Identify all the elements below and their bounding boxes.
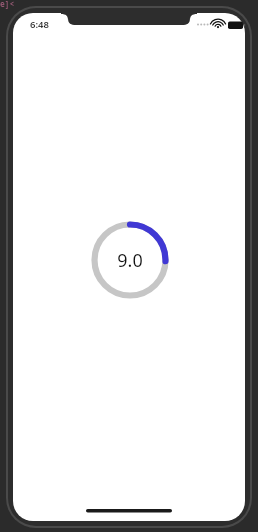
button[interactable]: Rating 9.0 out of 10 [94, 224, 166, 296]
staticText: 6:48 [30, 18, 49, 31]
staticText: 9.0 [117, 248, 143, 273]
staticText: e]< [0, 0, 15, 9]
